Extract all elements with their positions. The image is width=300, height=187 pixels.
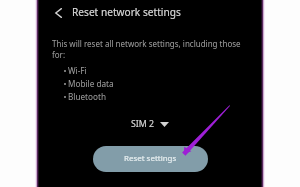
staticText: Mobile data: [68, 78, 114, 89]
staticText: Wi-Fi: [68, 65, 87, 76]
button[interactable]: SIM 2: [131, 118, 169, 130]
staticText: SIM 2: [131, 118, 155, 130]
staticText: Reset network settings: [72, 5, 181, 19]
staticText: This will reset all network settings, in…: [52, 38, 248, 60]
staticText: Bluetooth: [68, 91, 106, 102]
staticText: Reset settings: [124, 153, 177, 164]
button[interactable]: Reset settings: [93, 146, 208, 172]
button[interactable]: Back: [46, 0, 71, 25]
